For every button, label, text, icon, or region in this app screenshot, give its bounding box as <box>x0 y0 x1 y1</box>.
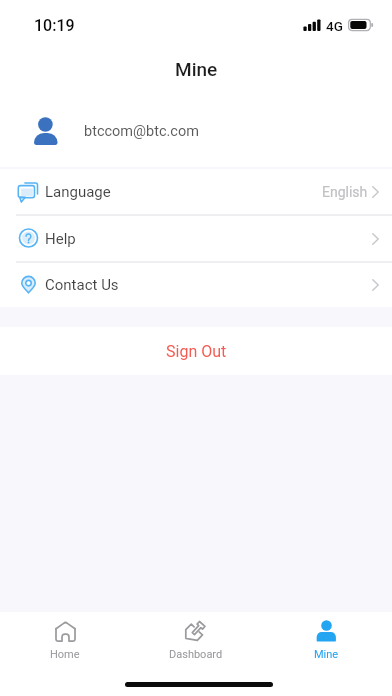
other: Dashboard <box>185 621 206 642</box>
staticText: Home <box>50 648 80 661</box>
staticText: Language <box>45 183 111 201</box>
staticText: Help <box>45 230 76 248</box>
other: Home <box>55 621 76 642</box>
button[interactable]: Dashboard <box>130 612 261 664</box>
staticText: 4G <box>326 18 343 34</box>
button[interactable]: Sign Out <box>0 327 392 375</box>
button[interactable]: Home <box>0 612 130 664</box>
button[interactable]: Help <box>0 216 392 261</box>
staticText: Dashboard <box>169 648 223 661</box>
button[interactable]: Contact Us <box>0 263 392 307</box>
staticText: Mine <box>314 648 339 661</box>
staticText: 10:19 <box>34 16 75 35</box>
button[interactable]: Language <box>0 169 392 214</box>
staticText: Sign Out <box>166 342 227 361</box>
button[interactable]: btccom@btc.com <box>0 89 392 167</box>
staticText: Contact Us <box>45 276 119 294</box>
staticText: Mine <box>175 58 218 80</box>
staticText: btccom@btc.com <box>84 123 199 140</box>
button[interactable]: Mine <box>261 612 392 664</box>
staticText: English <box>322 184 368 200</box>
other: Mine <box>316 621 337 642</box>
